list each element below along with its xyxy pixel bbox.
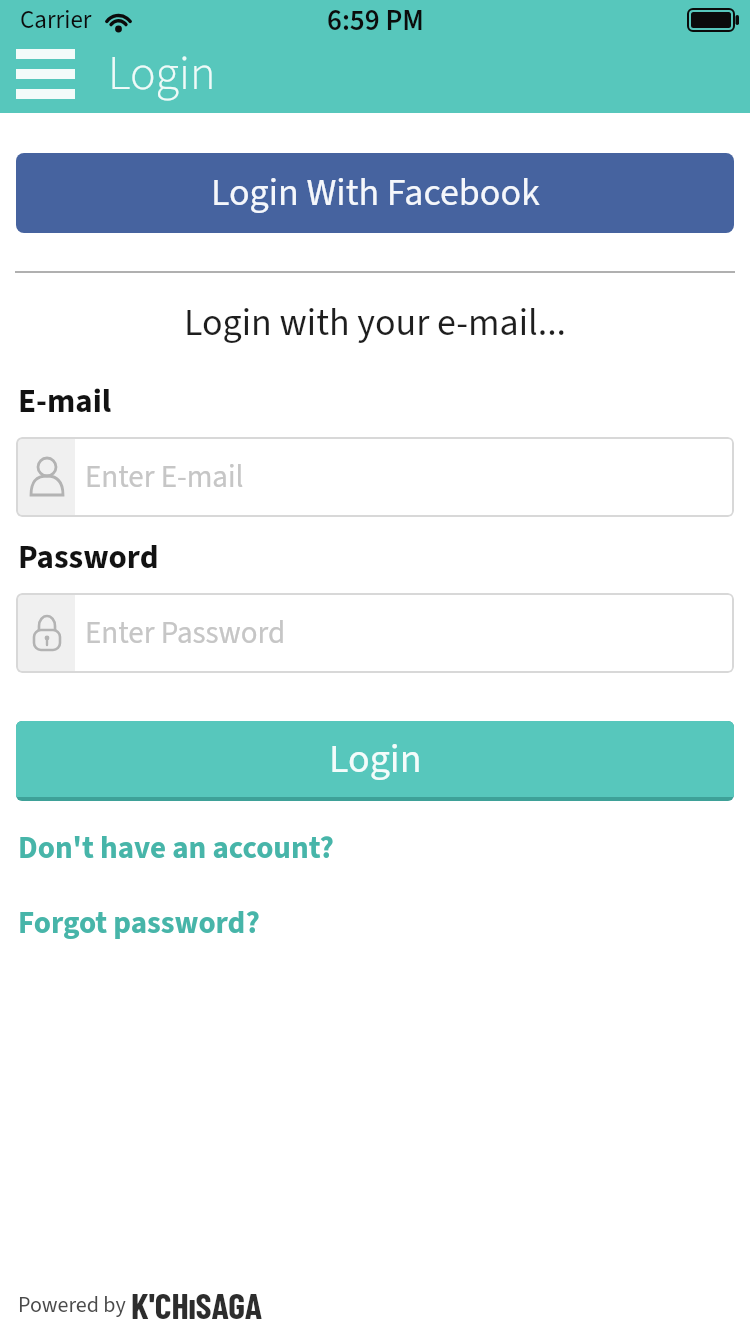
- staticText: Powered by: [18, 1289, 131, 1320]
- staticText: Login: [108, 40, 216, 107]
- staticText: Login With Facebook: [211, 166, 540, 220]
- staticText: 6:59 PM: [327, 0, 424, 40]
- staticText: Login: [329, 731, 422, 788]
- button[interactable]: Don't have an account?: [18, 826, 334, 870]
- button[interactable]: Login With Facebook: [16, 153, 734, 233]
- staticText: Enter E-mail: [85, 455, 244, 499]
- button[interactable]: Enter E-mail: [16, 437, 734, 517]
- button[interactable]: [16, 49, 75, 99]
- staticText: Enter Password: [85, 611, 286, 655]
- staticText: Don't have an account?: [18, 826, 334, 870]
- staticText: Login with your e-mail...: [184, 296, 567, 350]
- button[interactable]: Forgot password?: [18, 901, 260, 945]
- staticText: K'CHıSAGA: [131, 1283, 263, 1326]
- button[interactable]: Login: [16, 721, 734, 801]
- staticText: Forgot password?: [18, 901, 260, 945]
- staticText: Carrier: [20, 2, 92, 38]
- staticText: E-mail: [18, 378, 112, 425]
- staticText: Password: [18, 534, 159, 581]
- button[interactable]: Enter Password: [16, 593, 734, 673]
